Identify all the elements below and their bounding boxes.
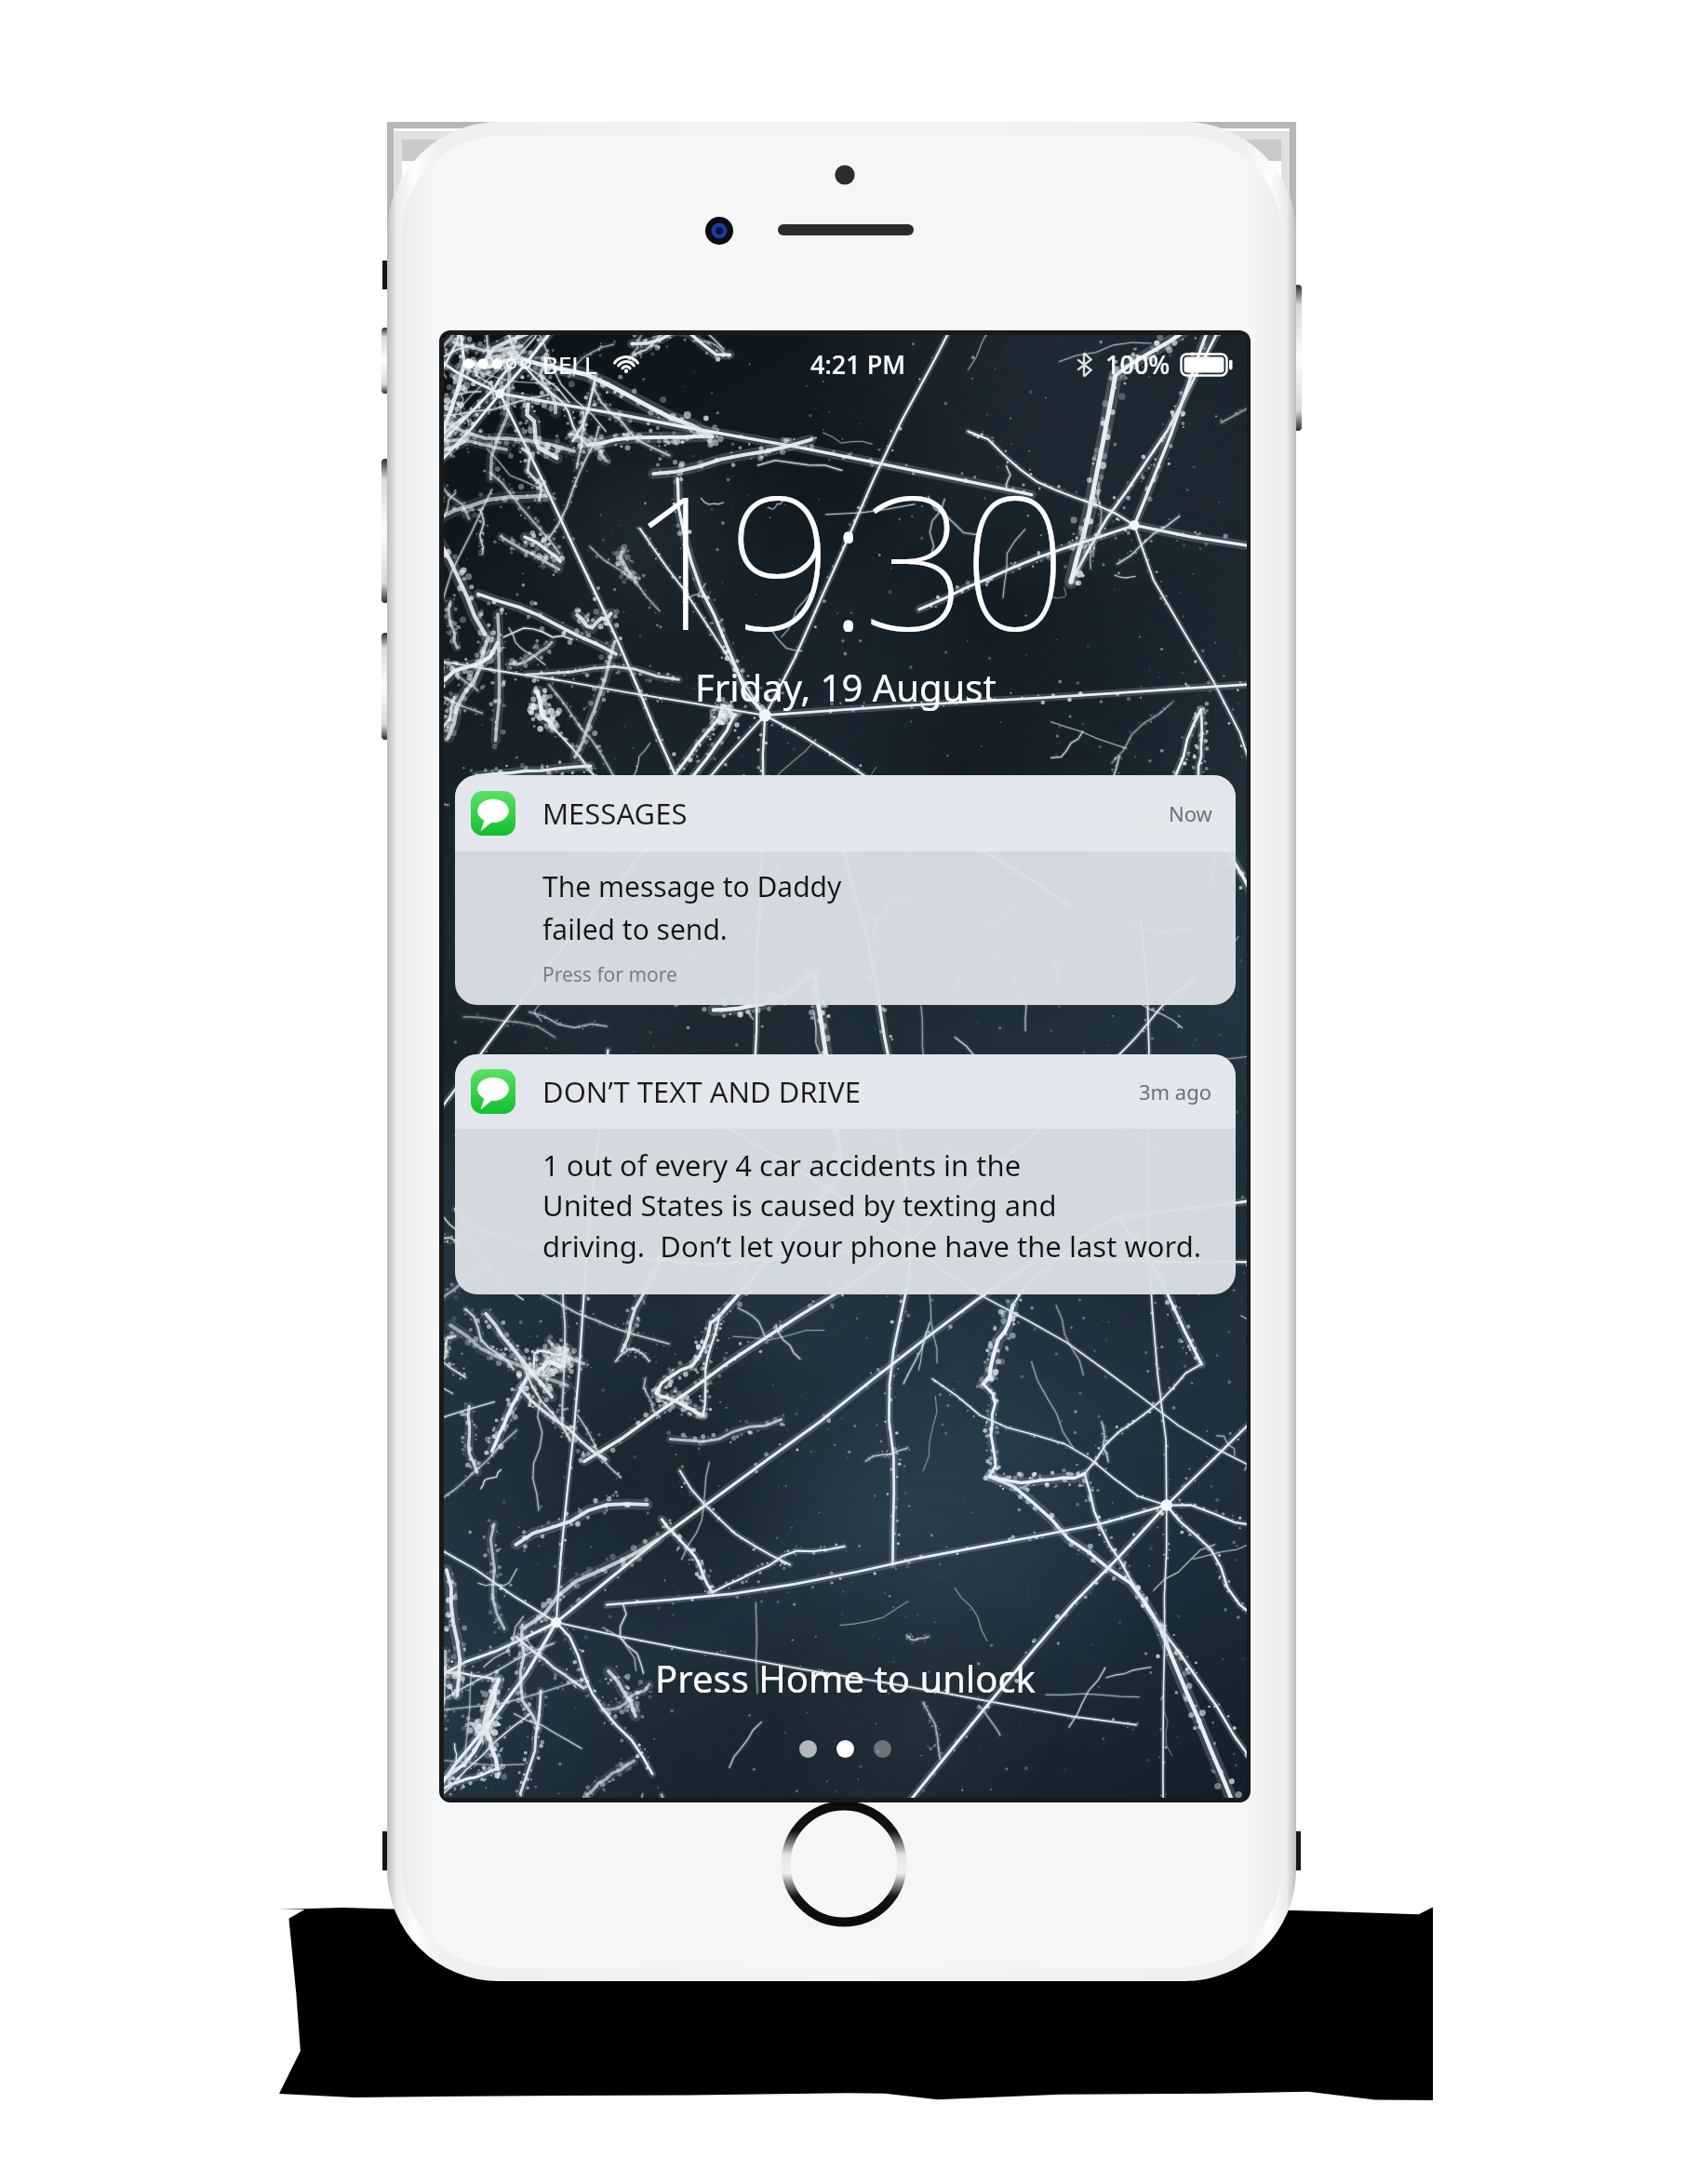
staticText: DON’T TEXT AND DRIVE [542, 1072, 861, 1111]
staticText: Press Home to unlock [655, 1653, 1036, 1703]
staticText: MESSAGES [542, 794, 688, 833]
staticText: 1 out of every 4 car accidents in the Un… [542, 1146, 1202, 1266]
staticText: The message to Daddy failed to send. [542, 867, 842, 948]
staticText: 100% [1105, 347, 1171, 382]
staticText: Press for more [542, 961, 677, 988]
button[interactable]: MESSAGES [455, 775, 1236, 1005]
button[interactable]: Lock screen page [836, 1740, 854, 1758]
staticText: BELL [542, 348, 597, 381]
button[interactable]: Home [782, 1802, 906, 1926]
staticText: 4:21 PM [810, 347, 905, 382]
button[interactable]: Widgets page [874, 1740, 891, 1758]
staticText: Friday, 19 August [695, 662, 997, 712]
staticText: 19:30 [629, 433, 1062, 684]
button[interactable]: Press Home to unlock [444, 1653, 1247, 1703]
button[interactable]: Camera page [799, 1740, 817, 1758]
button[interactable]: DON’T TEXT AND DRIVE [455, 1054, 1236, 1294]
staticText: 3m ago [1139, 1078, 1212, 1105]
staticText: Now [1169, 799, 1212, 827]
